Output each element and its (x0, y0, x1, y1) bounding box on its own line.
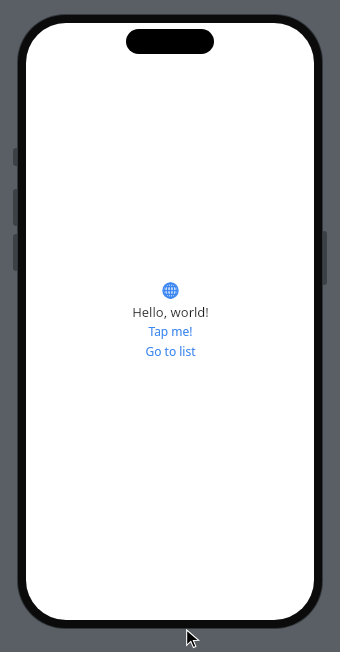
staticText: Hello, world! (132, 303, 209, 321)
staticText: Go to list (145, 343, 196, 359)
other: Globe (162, 282, 179, 299)
button[interactable]: Go to list (139, 341, 202, 361)
button[interactable]: Tap me! (142, 321, 199, 341)
staticText: Tap me! (148, 323, 193, 339)
other: Dynamic Island (126, 29, 214, 54)
